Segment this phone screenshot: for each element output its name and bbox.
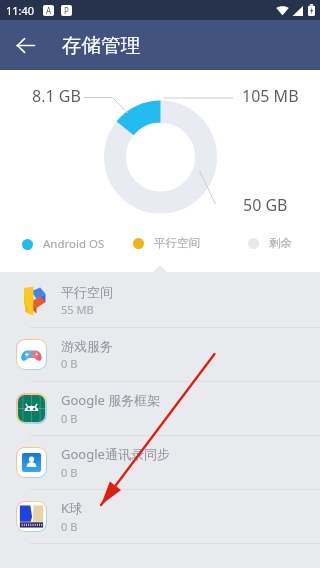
staticText: A: [46, 5, 52, 16]
staticText: 平行空间: [154, 236, 200, 250]
staticText: P: [64, 5, 69, 16]
staticText: Google 服务框架: [61, 391, 161, 409]
button[interactable]: Google 服务框架: [0, 381, 320, 435]
staticText: 存储管理: [62, 33, 140, 58]
staticText: 游戏服务: [61, 338, 113, 354]
button[interactable]: K球: [0, 489, 320, 543]
staticText: K球: [61, 499, 83, 517]
staticText: 0 B: [61, 356, 78, 371]
staticText: 11:40: [6, 3, 35, 18]
button[interactable]: Google通讯录同步: [0, 435, 320, 489]
staticText: 剩余: [269, 236, 292, 250]
staticText: 平行空间: [61, 284, 113, 300]
staticText: 50 GB: [243, 194, 288, 216]
button[interactable]: 游戏服务: [0, 327, 320, 381]
button[interactable]: 平行空间: [0, 274, 320, 327]
staticText: 0 B: [61, 519, 78, 534]
staticText: 0 B: [61, 465, 78, 480]
staticText: 105 MB: [242, 85, 299, 107]
staticText: 0 B: [61, 411, 78, 426]
staticText: 55 MB: [61, 302, 94, 317]
button[interactable]: Back: [6, 26, 44, 64]
staticText: Google通讯录同步: [61, 445, 170, 463]
staticText: 8.1 GB: [32, 85, 81, 107]
staticText: Android OS: [43, 236, 105, 252]
